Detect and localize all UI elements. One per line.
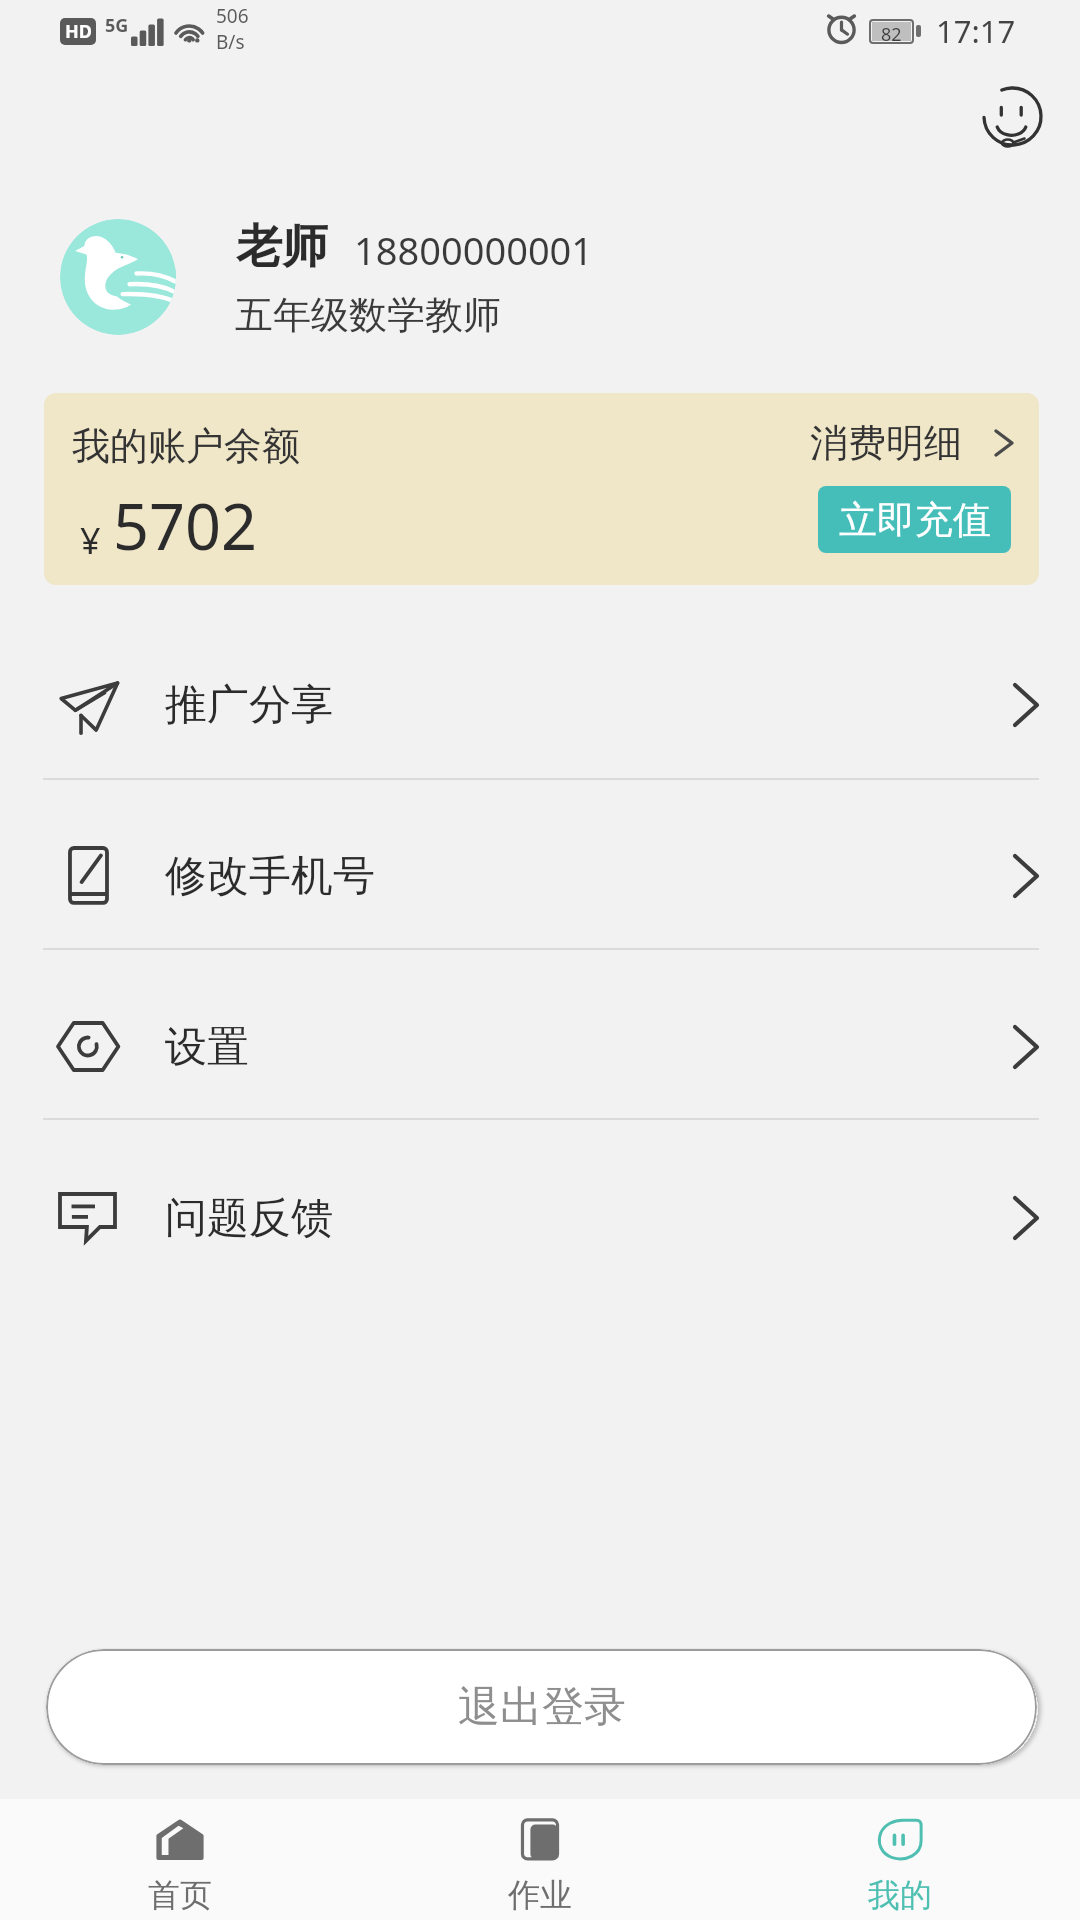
button[interactable]: 作业 <box>360 1799 720 1920</box>
staticText: 立即充值 <box>839 496 991 544</box>
staticText: 5702 <box>113 483 258 569</box>
button[interactable]: 修改手机号 <box>0 791 1080 961</box>
staticText: HD <box>65 19 92 44</box>
staticText: 推广分享 <box>165 679 333 732</box>
staticText: ¥ <box>80 516 101 565</box>
button[interactable]: 推广分享 <box>0 620 1080 790</box>
staticText: 我的 <box>868 1875 932 1915</box>
staticText: 5G <box>105 13 129 38</box>
staticText: B/s <box>216 29 245 55</box>
button[interactable]: 退出登录 <box>46 1649 1037 1765</box>
button[interactable]: 问题反馈 <box>0 1133 1080 1303</box>
button[interactable]: 立即充值 <box>818 486 1011 553</box>
staticText: 设置 <box>165 1021 249 1074</box>
button[interactable]: 设置 <box>0 962 1080 1132</box>
staticText: 18800000001 <box>354 224 594 276</box>
button[interactable]: 首页 <box>0 1799 360 1920</box>
staticText: 修改手机号 <box>165 850 375 903</box>
staticText: 17:17 <box>936 10 1016 52</box>
staticText: 作业 <box>508 1875 572 1915</box>
staticText: 退出登录 <box>458 1681 626 1734</box>
staticText: 首页 <box>148 1875 212 1915</box>
staticText: 我的账户余额 <box>72 422 300 470</box>
button[interactable]: Customer service <box>981 82 1053 154</box>
staticText: 老师 <box>236 218 328 276</box>
staticText: 五年级数学教师 <box>235 291 501 339</box>
staticText: 506 <box>216 3 249 29</box>
button[interactable]: 我的 <box>720 1799 1080 1920</box>
staticText: 82 <box>881 22 902 41</box>
button[interactable]: 消费明细 <box>810 419 1018 467</box>
staticText: 问题反馈 <box>165 1192 333 1245</box>
staticText: 消费明细 <box>810 419 962 467</box>
